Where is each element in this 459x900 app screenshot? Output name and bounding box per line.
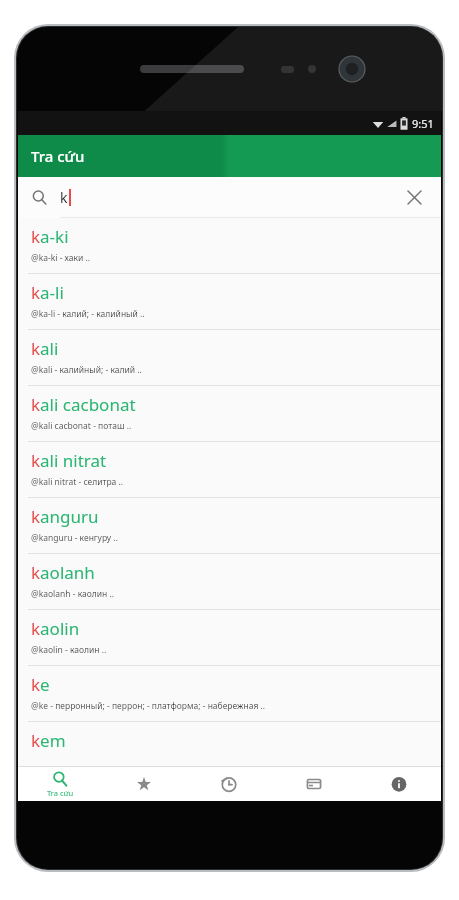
other: Search bbox=[32, 190, 47, 205]
button[interactable]: kali bbox=[18, 330, 441, 386]
button[interactable]: ka-ki bbox=[18, 218, 441, 274]
staticText: @kali nitrat - селитра .. bbox=[31, 476, 124, 488]
button[interactable]: History bbox=[186, 767, 271, 801]
staticText: kem bbox=[31, 729, 66, 752]
button[interactable]: ka-li bbox=[18, 274, 441, 330]
button[interactable]: Favorites bbox=[102, 767, 186, 801]
button[interactable]: kali cacbonat bbox=[18, 386, 441, 442]
button[interactable]: kanguru bbox=[18, 498, 441, 554]
button[interactable]: Information bbox=[356, 767, 441, 801]
staticText: @kanguru - кенгуру .. bbox=[31, 532, 118, 544]
button[interactable]: kali nitrat bbox=[18, 442, 441, 498]
button[interactable]: Search bbox=[18, 767, 102, 801]
button[interactable]: kaolin bbox=[18, 610, 441, 666]
button[interactable]: ke bbox=[18, 666, 441, 722]
staticText: @kali - калийный; - калий .. bbox=[31, 364, 142, 376]
staticText: Tra cứu bbox=[31, 146, 85, 166]
staticText: kali cacbonat bbox=[31, 393, 136, 416]
staticText: k bbox=[60, 188, 68, 207]
staticText: kaolanh bbox=[31, 561, 95, 584]
staticText: Tra cứu bbox=[47, 788, 74, 798]
staticText: 9:51 bbox=[412, 116, 434, 131]
staticText: @ka-li - калий; - калийный .. bbox=[31, 308, 145, 320]
staticText: kali bbox=[31, 337, 59, 360]
staticText: kanguru bbox=[31, 505, 99, 528]
button[interactable]: kem bbox=[18, 722, 441, 752]
button[interactable]: kaolanh bbox=[18, 554, 441, 610]
button[interactable]: Flashcards bbox=[271, 767, 356, 801]
staticText: @kaolanh - каолин .. bbox=[31, 588, 115, 600]
staticText: ka-ki bbox=[31, 225, 69, 248]
staticText: ka-li bbox=[31, 281, 64, 304]
staticText: ke bbox=[31, 673, 50, 696]
staticText: @ke - перронный; - перрон; - платформа; … bbox=[31, 700, 266, 712]
button[interactable]: Clear bbox=[395, 178, 433, 216]
staticText: @ka-ki - хаки .. bbox=[31, 252, 91, 264]
staticText: @kali cacbonat - поташ .. bbox=[31, 420, 132, 432]
staticText: kaolin bbox=[31, 617, 80, 640]
staticText: kali nitrat bbox=[31, 449, 107, 472]
staticText: @kaolin - каолин .. bbox=[31, 644, 107, 656]
